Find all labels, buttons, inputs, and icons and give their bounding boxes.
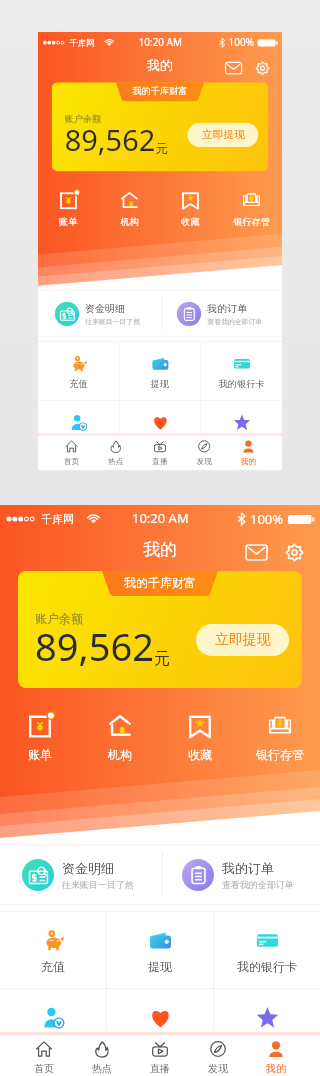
staticText: 89,562 xyxy=(65,120,155,159)
staticText: 首页 xyxy=(34,1062,54,1075)
staticText: 提现 xyxy=(151,378,169,389)
button[interactable]: 立即提现 xyxy=(196,624,289,656)
button[interactable]: 我的银行卡 xyxy=(201,342,282,400)
button[interactable]: 账单 xyxy=(38,189,99,232)
button[interactable]: 发现 xyxy=(182,436,226,470)
staticText: 我的 xyxy=(266,1062,286,1075)
button[interactable]: 充值 xyxy=(0,912,106,988)
staticText: 100% xyxy=(250,510,284,528)
staticText: 千库网 xyxy=(69,37,94,48)
button[interactable]: 收藏 xyxy=(160,711,240,767)
button[interactable]: 充值 xyxy=(38,342,119,400)
staticText: 账单 xyxy=(59,216,78,228)
staticText: 查看我的全部订单 xyxy=(207,317,262,325)
staticText: 资金明细 xyxy=(62,860,114,876)
button[interactable]: 资金明细 xyxy=(0,844,160,905)
staticText: 我的银行卡 xyxy=(219,378,264,389)
staticText: 100% xyxy=(229,36,254,49)
staticText: 我的 xyxy=(147,58,173,74)
button[interactable]: 银行存管 xyxy=(240,711,320,767)
staticText: 发现 xyxy=(208,1062,228,1075)
staticText: 我的千库财富 xyxy=(116,85,204,97)
staticText: 账单 xyxy=(28,747,52,762)
staticText: 我的 xyxy=(143,539,177,560)
button[interactable]: 我的银行卡 xyxy=(214,912,320,988)
staticText: 元 xyxy=(155,142,168,157)
staticText: 查看我的全部订单 xyxy=(222,879,294,890)
staticText: 实名认证 xyxy=(29,1036,77,1051)
button[interactable]: 账单 xyxy=(0,711,80,767)
staticText: 10:20 AM xyxy=(132,509,189,527)
button[interactable]: 我的关注 xyxy=(120,401,200,459)
button[interactable]: 实名认证 xyxy=(38,401,119,459)
button[interactable]: Settings xyxy=(276,534,312,570)
button[interactable]: 直播 xyxy=(138,436,182,470)
button[interactable] xyxy=(52,82,268,171)
button[interactable]: 收藏 xyxy=(160,189,221,232)
button[interactable]: 发现 xyxy=(189,1035,247,1076)
button[interactable]: 实名认证 xyxy=(0,989,106,1065)
staticText: 我的关注 xyxy=(142,436,178,448)
staticText: 充值 xyxy=(41,959,65,974)
staticText: 机构 xyxy=(108,747,132,762)
button[interactable]: 机构 xyxy=(80,711,160,767)
staticText: 元 xyxy=(154,649,170,669)
staticText: 我的订单 xyxy=(222,860,274,876)
button[interactable]: 首页 xyxy=(15,1035,73,1076)
button[interactable]: 热点 xyxy=(94,436,138,470)
button[interactable]: 首页 xyxy=(49,436,94,470)
button[interactable]: Settings xyxy=(248,54,276,81)
staticText: 直播 xyxy=(150,1062,170,1075)
staticText: 我的 xyxy=(241,456,256,466)
button[interactable] xyxy=(18,571,302,688)
button[interactable]: 我的收藏 xyxy=(214,989,320,1065)
staticText: 我的订单 xyxy=(207,302,247,315)
staticText: 机构 xyxy=(120,216,139,228)
button[interactable]: 资金明细 xyxy=(38,290,160,337)
staticText: 银行存管 xyxy=(233,216,270,228)
button[interactable]: 我的 xyxy=(226,436,270,470)
button[interactable]: 提现 xyxy=(107,912,213,988)
button[interactable]: 直播 xyxy=(131,1035,189,1076)
staticText: 收藏 xyxy=(188,747,212,762)
staticText: 实名认证 xyxy=(60,436,97,448)
button[interactable]: Messages xyxy=(219,54,247,81)
button[interactable]: 我的订单 xyxy=(160,844,320,905)
staticText: 立即提现 xyxy=(215,631,271,649)
button[interactable]: 机构 xyxy=(99,189,160,232)
button[interactable]: 提现 xyxy=(120,342,200,400)
button[interactable]: 我的订单 xyxy=(160,290,282,337)
button[interactable]: 立即提现 xyxy=(187,123,258,147)
staticText: 我的收藏 xyxy=(223,436,260,448)
staticText: 提现 xyxy=(148,959,172,974)
staticText: 热点 xyxy=(108,456,123,466)
staticText: 往来账目一目了然 xyxy=(62,879,134,890)
staticText: 账户余额 xyxy=(65,113,101,124)
staticText: 立即提现 xyxy=(202,128,245,142)
staticText: 我的银行卡 xyxy=(237,959,297,974)
staticText: 银行存管 xyxy=(256,747,304,762)
staticText: 千库网 xyxy=(41,512,74,526)
button[interactable]: Messages xyxy=(238,534,274,570)
staticText: 直播 xyxy=(152,456,168,466)
button[interactable]: 银行存管 xyxy=(221,189,282,232)
staticText: 往来账目一目了然 xyxy=(85,317,140,325)
button[interactable]: 我的 xyxy=(247,1035,305,1076)
button[interactable]: 热点 xyxy=(73,1035,131,1076)
staticText: 充值 xyxy=(69,378,88,389)
staticText: 热点 xyxy=(92,1062,112,1075)
staticText: 我的收藏 xyxy=(243,1036,291,1051)
button[interactable]: 我的关注 xyxy=(107,989,213,1065)
staticText: 我的关注 xyxy=(136,1036,184,1051)
staticText: 资金明细 xyxy=(85,302,125,315)
button[interactable]: 我的收藏 xyxy=(201,401,282,459)
staticText: 我的千库财富 xyxy=(102,575,218,590)
staticText: 发现 xyxy=(197,456,212,466)
staticText: 10:20 AM xyxy=(139,35,182,49)
staticText: 收藏 xyxy=(181,216,200,228)
staticText: 89,562 xyxy=(35,620,154,672)
staticText: 首页 xyxy=(64,456,79,466)
staticText: 账户余额 xyxy=(35,611,83,626)
